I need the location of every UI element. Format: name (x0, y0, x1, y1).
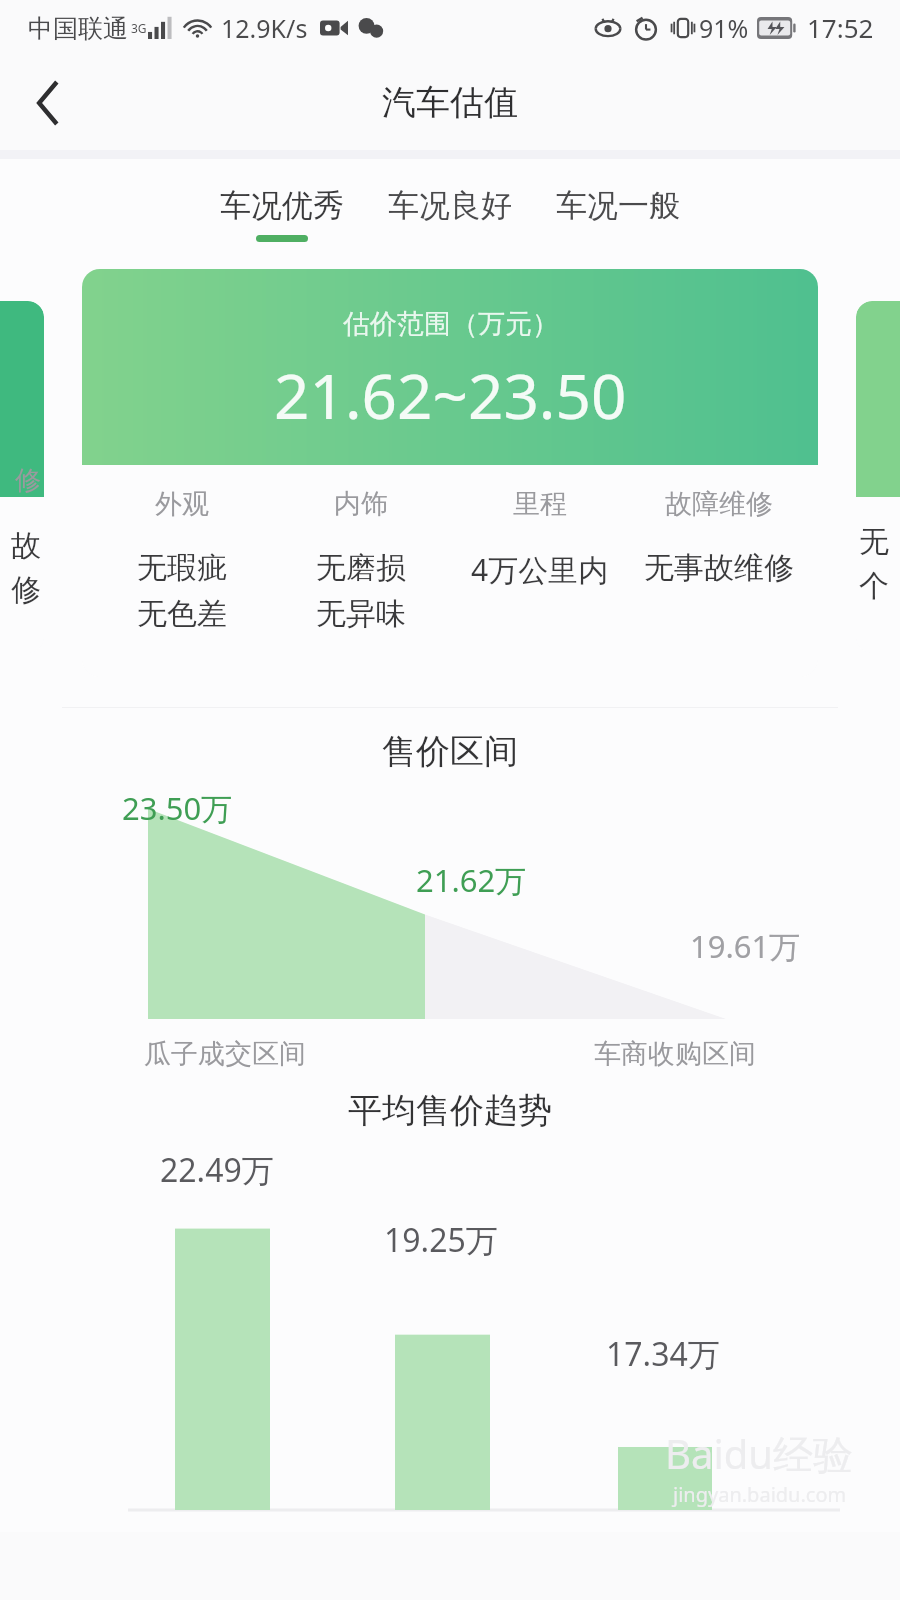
button[interactable]: 估价范围（万元） (82, 269, 818, 677)
staticText: 中国联通 (28, 13, 128, 44)
staticText: 个 (859, 567, 889, 605)
staticText: 19.61万 (690, 925, 801, 967)
staticText: 车况优秀 (220, 186, 344, 225)
staticText: 无色差 (137, 595, 227, 633)
button[interactable]: Back (18, 72, 80, 134)
staticText: 91% (699, 11, 749, 45)
staticText: 无 (859, 523, 889, 561)
staticText: 车况良好 (388, 186, 512, 225)
staticText: 4万公里内 (471, 549, 609, 590)
staticText: 19.25万 (384, 1218, 498, 1262)
staticText: 无瑕疵 (137, 549, 227, 587)
staticText: 3G (131, 20, 147, 36)
button[interactable]: 无 (856, 301, 900, 653)
staticText: jingyan.baidu.com (673, 1481, 847, 1508)
staticText: 无磨损 (316, 549, 406, 587)
staticText: 故 (11, 527, 41, 565)
staticText: 无事故维修 (644, 549, 794, 587)
staticText: 12.9K/s (221, 11, 308, 45)
staticText: 里程 (513, 487, 567, 521)
staticText: 修 (15, 464, 41, 497)
staticText: 无异味 (316, 595, 406, 633)
button[interactable]: 车况良好 (380, 180, 520, 248)
staticText: 故障维修 (665, 487, 773, 521)
staticText: 外观 (155, 487, 209, 521)
staticText: 车商收购区间 (594, 1037, 756, 1071)
staticText: 估价范围（万元） (343, 307, 559, 341)
staticText: 21.62~23.50 (274, 353, 627, 437)
staticText: 瓜子成交区间 (144, 1037, 306, 1071)
staticText: 22.49万 (160, 1148, 274, 1192)
staticText: Baidu经验 (665, 1426, 854, 1481)
staticText: 售价区间 (382, 730, 518, 773)
staticText: 内饰 (334, 487, 388, 521)
staticText: 17.34万 (606, 1332, 720, 1376)
staticText: 21.62万 (416, 859, 527, 901)
staticText: 23.50万 (122, 787, 233, 829)
staticText: 平均售价趋势 (348, 1089, 552, 1132)
button[interactable]: 修 (0, 301, 44, 653)
staticText: 车况一般 (556, 186, 680, 225)
staticText: 17:52 (807, 10, 874, 45)
button[interactable]: 车况优秀 (212, 180, 352, 248)
staticText: 汽车估值 (382, 81, 518, 124)
button[interactable]: 车况一般 (548, 180, 688, 248)
staticText: 修 (11, 571, 41, 609)
